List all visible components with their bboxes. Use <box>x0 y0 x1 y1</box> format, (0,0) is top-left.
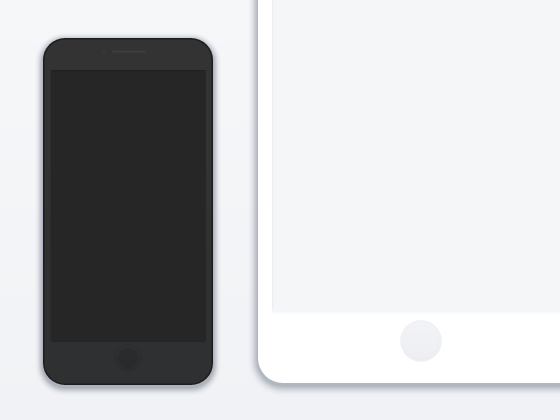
button[interactable]: Tablet device mockup <box>0 0 560 420</box>
